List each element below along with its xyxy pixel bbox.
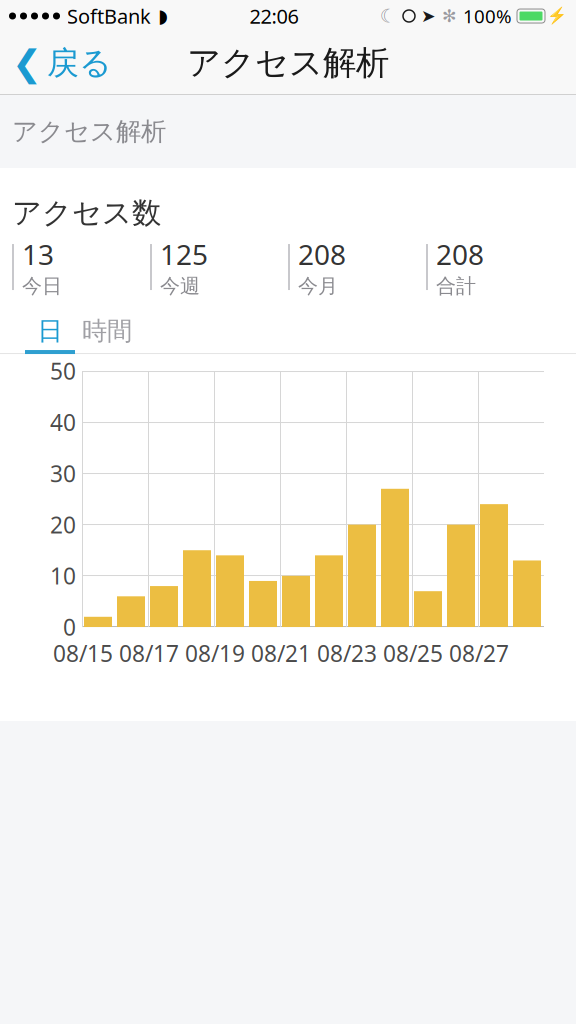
staticText: 今月 <box>298 274 338 298</box>
staticText: 22:06 <box>249 3 298 29</box>
staticText: 08/17 <box>119 638 179 668</box>
staticText: 08/15 <box>53 638 113 668</box>
staticText: ✻ <box>442 6 457 26</box>
staticText: 08/27 <box>449 638 509 668</box>
staticText: ◗ <box>158 5 168 27</box>
staticText: 今日 <box>22 274 62 298</box>
staticText: 208 <box>298 236 346 273</box>
staticText: アクセス解析 <box>12 116 166 147</box>
staticText: 208 <box>436 236 484 273</box>
staticText: 日 <box>37 315 62 347</box>
staticText: アクセス解析 <box>187 42 389 83</box>
staticText: 08/23 <box>317 638 377 668</box>
staticText: アクセス数 <box>12 195 161 231</box>
staticText: 30 <box>50 458 76 488</box>
button[interactable]: 日 <box>25 312 75 350</box>
staticText: 20 <box>50 510 76 540</box>
staticText: 0 <box>63 612 76 642</box>
staticText: 08/21 <box>251 638 311 668</box>
staticText: 合計 <box>436 274 476 298</box>
staticText: 戻る <box>47 43 112 83</box>
staticText: SoftBank <box>67 3 151 29</box>
staticText: 50 <box>50 356 76 386</box>
staticText: 40 <box>50 407 76 437</box>
staticText: ☾ <box>380 5 397 27</box>
staticText: ❮ <box>12 43 42 83</box>
staticText: 時間 <box>82 315 132 347</box>
staticText: 08/25 <box>383 638 443 668</box>
staticText: 100% <box>463 4 512 28</box>
button[interactable]: ❮ <box>0 32 124 94</box>
staticText: 08/19 <box>185 638 245 668</box>
staticText: ➤ <box>421 6 436 26</box>
staticText: 125 <box>160 236 208 273</box>
staticText: 13 <box>22 236 54 273</box>
staticText: 10 <box>50 561 76 591</box>
staticText: ⚡ <box>547 7 567 25</box>
staticText: 今週 <box>160 274 200 298</box>
button[interactable]: 時間 <box>75 312 139 350</box>
